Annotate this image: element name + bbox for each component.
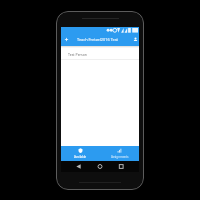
staticText: Available: [74, 155, 87, 159]
button[interactable]: Account: [131, 33, 139, 46]
button[interactable]: Back: [61, 161, 87, 172]
button[interactable]: Available: [61, 146, 100, 161]
staticText: Assignments: [111, 155, 129, 159]
button[interactable]: Add: [61, 33, 71, 46]
button[interactable]: Test Person: [61, 49, 139, 59]
button[interactable]: Recents: [113, 161, 139, 172]
button[interactable]: Assignments: [100, 146, 139, 161]
staticText: Teach Fretzel2016 Test: [77, 37, 131, 42]
staticText: Test Person: [68, 52, 88, 57]
button[interactable]: Home: [87, 161, 113, 172]
